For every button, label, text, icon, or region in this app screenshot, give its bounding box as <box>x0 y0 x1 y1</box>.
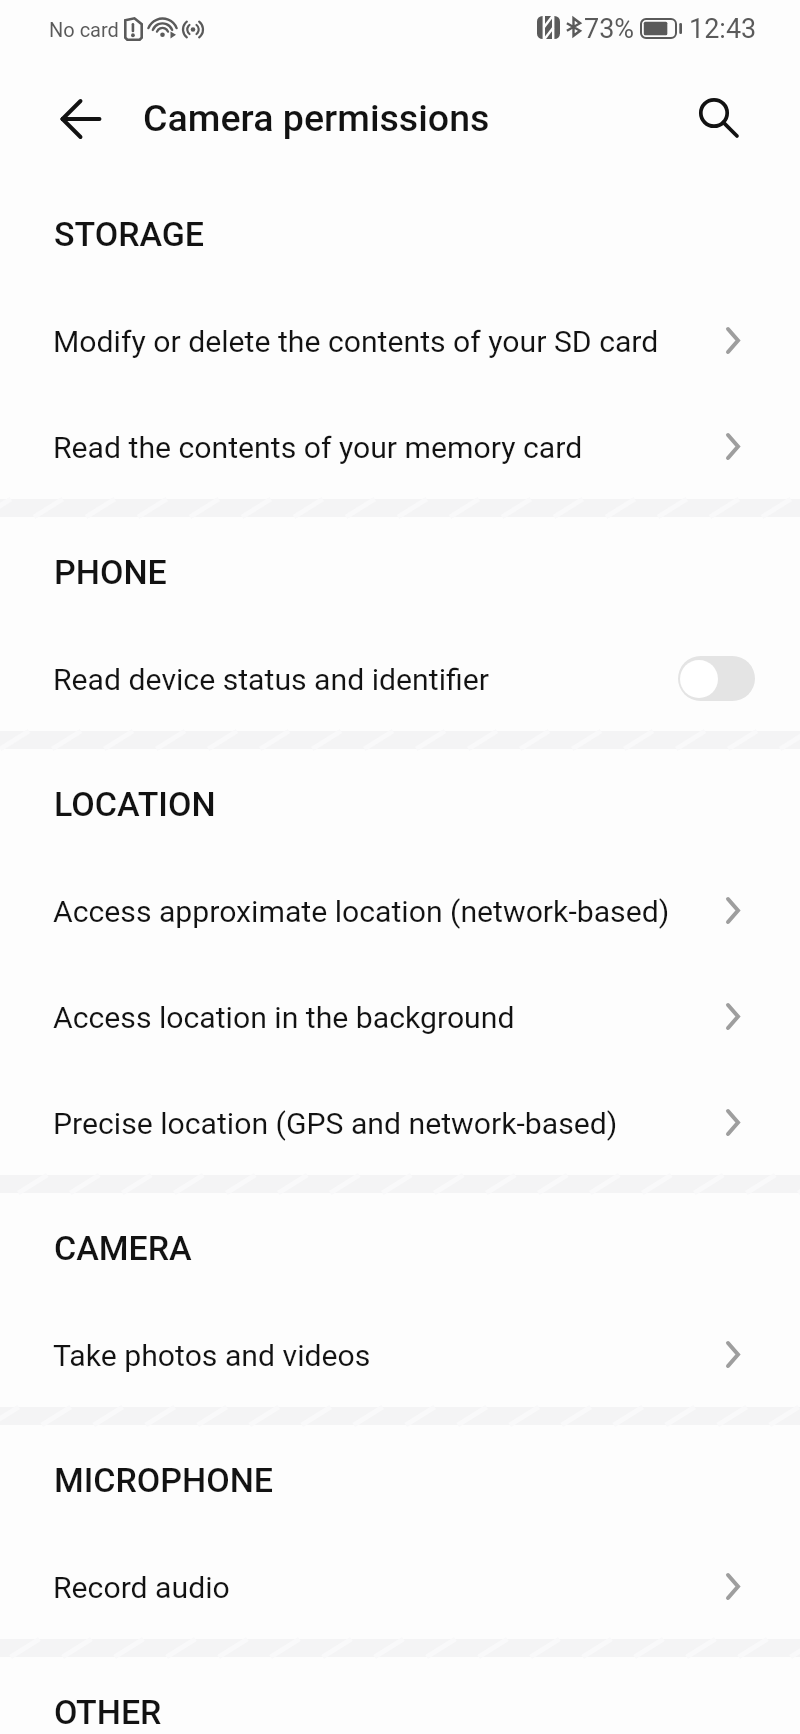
staticText: PHONE <box>54 552 167 592</box>
staticText: Access approximate location (network-bas… <box>53 894 670 929</box>
staticText: Camera permissions <box>143 96 490 140</box>
button[interactable]: Search <box>688 88 750 150</box>
staticText: Read the contents of your memory card <box>53 430 583 465</box>
staticText: OTHER <box>54 1692 162 1732</box>
button[interactable]: Read the contents of your memory card <box>0 393 800 499</box>
button[interactable]: Access location in the background <box>0 963 800 1069</box>
button[interactable]: Modify or delete the contents of your SD… <box>0 287 800 393</box>
staticText: CAMERA <box>54 1228 192 1268</box>
staticText: 73% <box>584 13 635 45</box>
button[interactable]: Back <box>49 88 111 150</box>
button[interactable]: Read device status and identifier toggle <box>678 656 755 701</box>
button[interactable]: Read device status and identifier <box>0 625 800 731</box>
button[interactable]: Take photos and videos <box>0 1301 800 1407</box>
staticText: Record audio <box>53 1570 230 1605</box>
button[interactable]: Record audio <box>0 1533 800 1639</box>
staticText: Read device status and identifier <box>53 662 489 697</box>
staticText: Precise location (GPS and network-based) <box>53 1106 618 1141</box>
button[interactable]: Access approximate location (network-bas… <box>0 857 800 963</box>
staticText: Modify or delete the contents of your SD… <box>53 324 659 359</box>
button[interactable]: Precise location (GPS and network-based) <box>0 1069 800 1175</box>
staticText: 12:43 <box>689 13 757 45</box>
staticText: STORAGE <box>54 214 205 254</box>
staticText: Take photos and videos <box>53 1338 371 1373</box>
staticText: No card <box>49 18 119 41</box>
staticText: MICROPHONE <box>54 1460 274 1500</box>
staticText: Access location in the background <box>53 1000 515 1035</box>
staticText: LOCATION <box>54 784 216 824</box>
